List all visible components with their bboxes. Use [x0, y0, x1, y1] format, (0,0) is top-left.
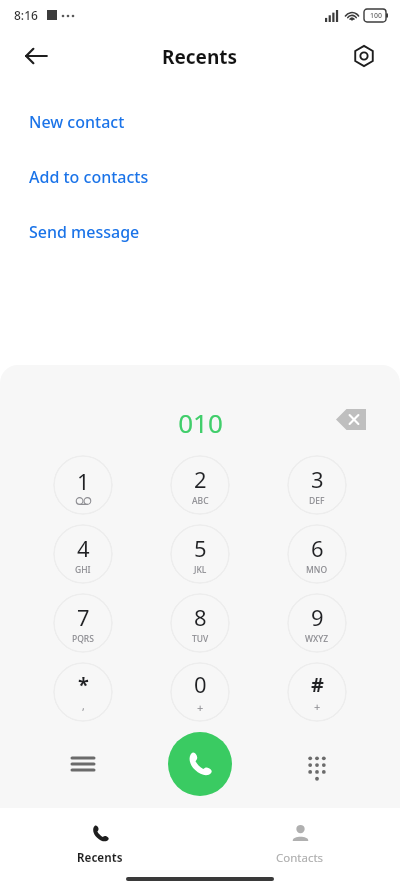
staticText: 6 — [311, 533, 324, 563]
button[interactable]: Back — [12, 32, 60, 80]
staticText: GHI — [75, 564, 91, 576]
staticText: # — [311, 671, 324, 698]
button[interactable]: * — [53, 662, 113, 722]
button[interactable]: # — [287, 662, 347, 722]
staticText: 7 — [77, 602, 90, 632]
button[interactable]: Recents — [0, 815, 200, 889]
staticText: New contact — [29, 111, 125, 133]
button[interactable]: 2 — [170, 455, 230, 515]
button[interactable]: Add to contacts — [0, 160, 400, 193]
button[interactable]: Settings — [340, 32, 388, 80]
staticText: 100 — [370, 11, 383, 21]
staticText: ABC — [192, 495, 209, 507]
staticText: Send message — [29, 221, 140, 243]
button[interactable]: Send message — [0, 215, 400, 248]
button[interactable]: 8 — [170, 593, 230, 653]
staticText: , — [82, 699, 85, 713]
button[interactable]: 9 — [287, 593, 347, 653]
button[interactable]: 4 — [53, 524, 113, 584]
staticText: 0 — [194, 669, 207, 699]
staticText: Recents — [162, 44, 238, 70]
staticText: Add to contacts — [29, 166, 149, 188]
staticText: 1 — [77, 466, 90, 496]
staticText: 5 — [194, 533, 207, 563]
staticText: * — [78, 671, 89, 698]
button[interactable]: Call log menu — [53, 734, 113, 794]
button[interactable]: Contacts — [200, 815, 400, 889]
staticText: + — [197, 700, 204, 715]
staticText: 8 — [194, 602, 207, 632]
staticText: 2 — [194, 464, 207, 494]
staticText: TUV — [192, 633, 209, 645]
staticText: Recents — [77, 850, 123, 866]
staticText: PQRS — [72, 633, 94, 645]
staticText: 8:16 — [14, 7, 38, 23]
button[interactable]: 5 — [170, 524, 230, 584]
button[interactable]: Call — [168, 732, 232, 796]
button[interactable]: 0 — [170, 662, 230, 722]
staticText: DEF — [309, 495, 325, 507]
button[interactable]: Show keypad — [287, 734, 347, 794]
staticText: Contacts — [276, 850, 324, 866]
staticText: + — [314, 699, 321, 714]
staticText: 4 — [77, 533, 90, 563]
staticText: JKL — [194, 564, 207, 576]
button[interactable]: 7 — [53, 593, 113, 653]
staticText: 010 — [178, 405, 223, 440]
button[interactable]: Backspace — [328, 403, 374, 435]
button[interactable]: 6 — [287, 524, 347, 584]
staticText: WXYZ — [305, 633, 329, 645]
button[interactable]: 3 — [287, 455, 347, 515]
button[interactable]: New contact — [0, 105, 400, 138]
staticText: MNO — [306, 564, 328, 576]
button[interactable]: 1 — [53, 455, 113, 515]
staticText: 9 — [311, 602, 324, 632]
staticText: 3 — [311, 464, 324, 494]
